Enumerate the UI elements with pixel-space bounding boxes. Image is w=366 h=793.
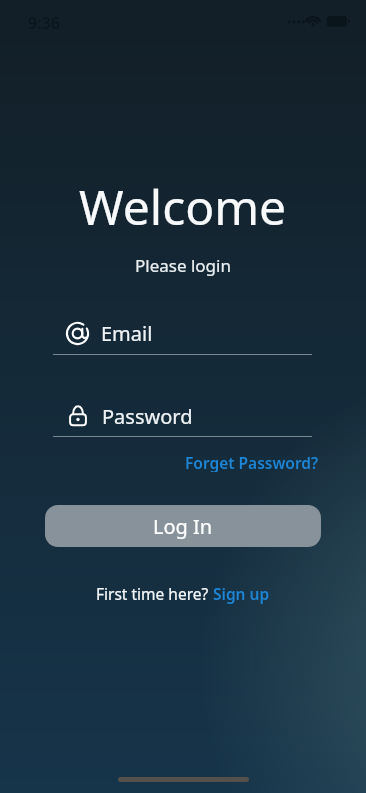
staticText: First time here? [96,583,213,604]
staticText: Please login [135,254,231,277]
staticText: 9:36 [28,12,60,34]
staticText: Password [102,403,193,430]
staticText: Sign up [213,583,270,604]
staticText: Log In [153,513,213,540]
staticText: Email [101,320,153,347]
button[interactable]: Forget Password? [185,452,319,472]
button[interactable]: Sign up [213,583,270,604]
button[interactable]: Password [53,402,312,430]
staticText: Welcome [79,174,287,230]
button[interactable]: Email [53,319,312,347]
staticText: Forget Password? [185,452,319,472]
button[interactable]: Log In [45,505,321,547]
